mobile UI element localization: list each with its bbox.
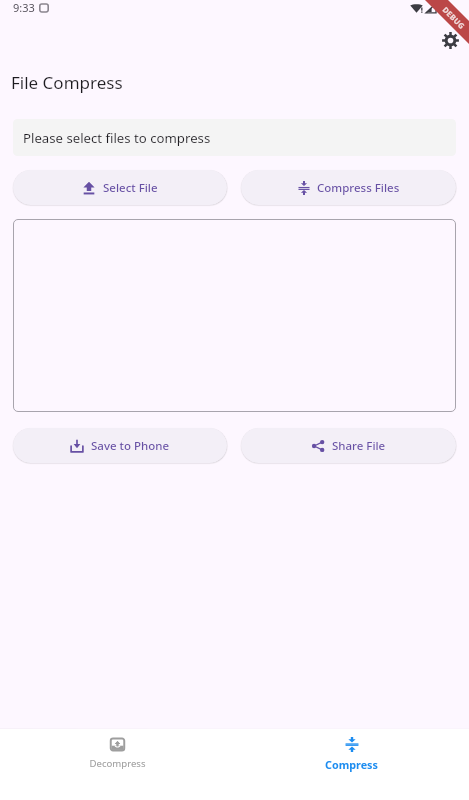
staticText: Share File xyxy=(332,438,386,454)
staticText: Save to Phone xyxy=(91,438,170,454)
button[interactable]: Save to Phone xyxy=(13,428,227,463)
staticText: 9:33 xyxy=(13,0,35,15)
button[interactable]: Settings xyxy=(437,27,463,53)
button[interactable]: Select File xyxy=(13,170,227,205)
button[interactable]: Decompress xyxy=(0,729,234,770)
button[interactable]: Share File xyxy=(241,428,456,463)
staticText: Compress Files xyxy=(317,180,400,196)
staticText: Compress xyxy=(325,757,378,772)
staticText: File Compress xyxy=(11,71,123,94)
staticText: Decompress xyxy=(89,757,146,770)
button[interactable]: Compress xyxy=(234,729,469,772)
staticText: Please select files to compress xyxy=(23,129,211,147)
staticText: Select File xyxy=(103,180,158,196)
staticText: DEBUG xyxy=(441,5,467,31)
button[interactable]: Compress Files xyxy=(241,170,456,205)
